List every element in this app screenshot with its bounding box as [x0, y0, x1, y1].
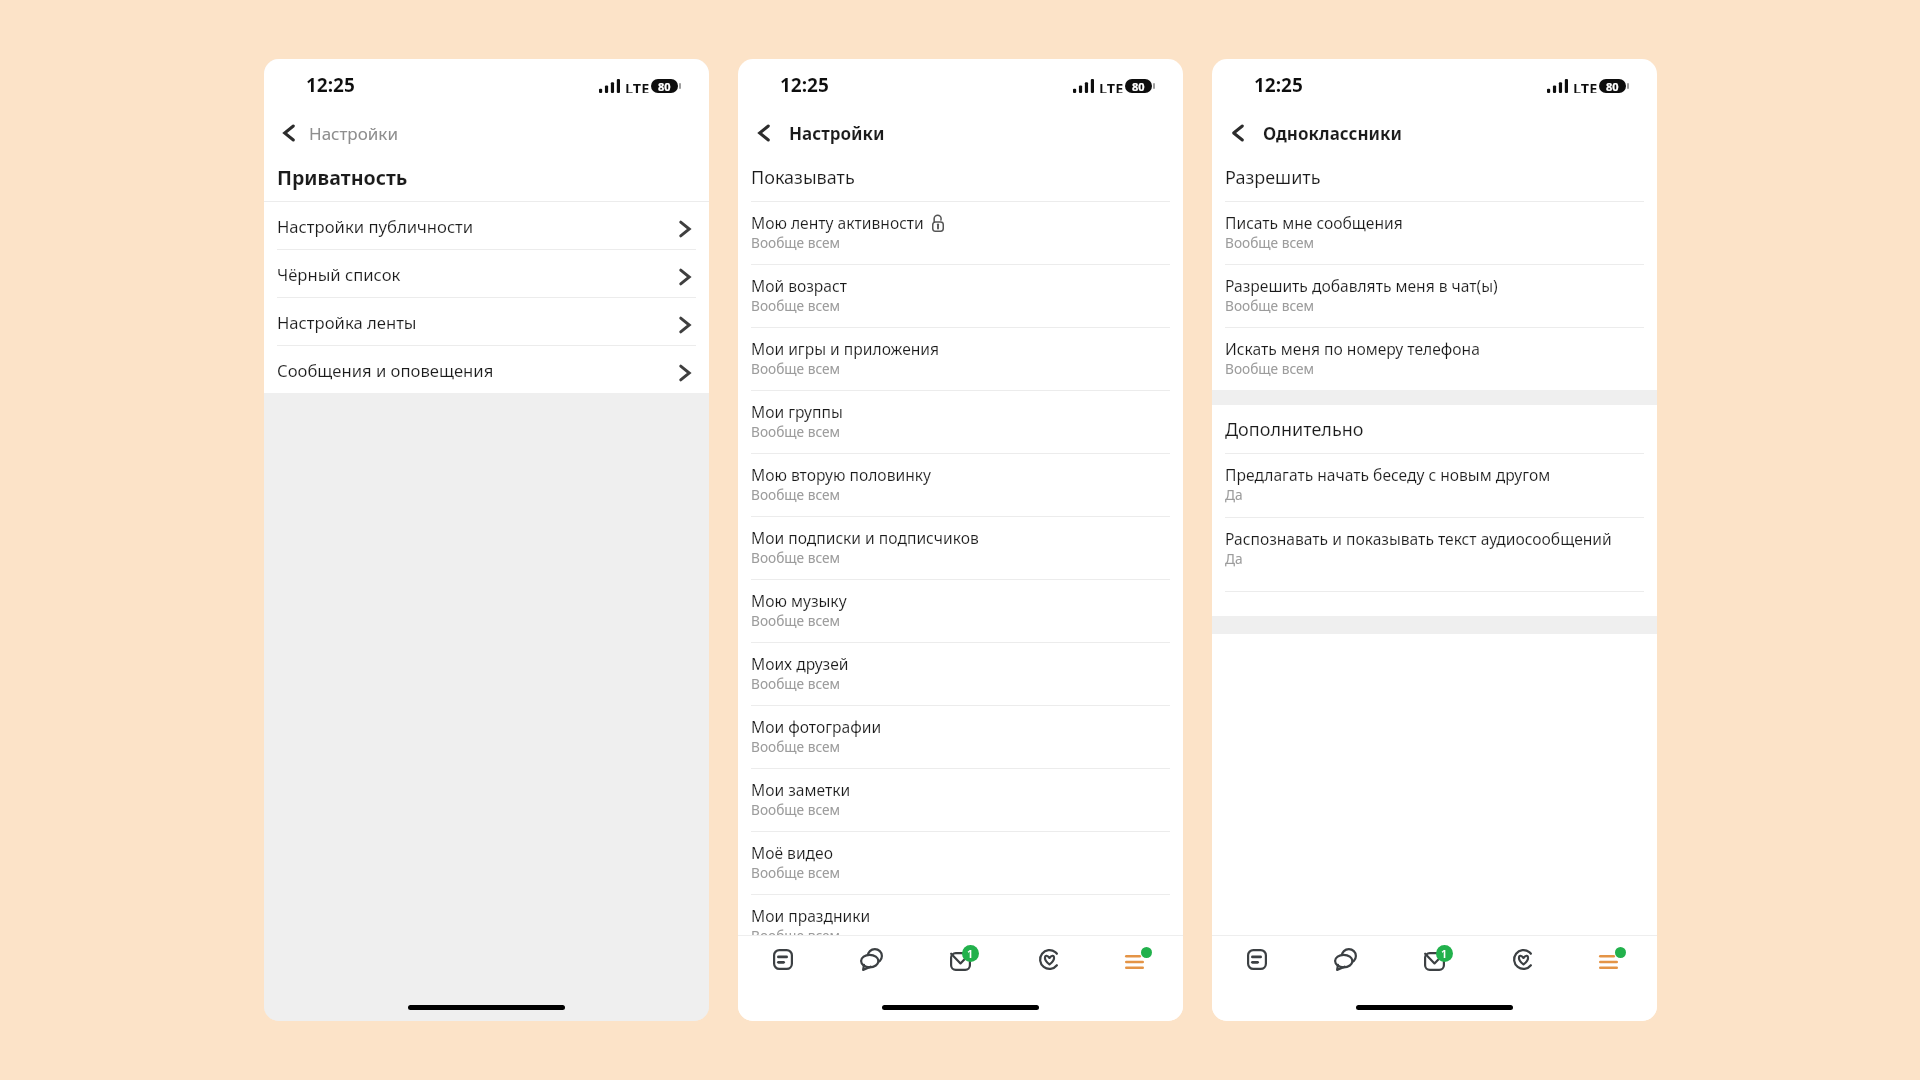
- staticText: LTE: [1099, 78, 1124, 93]
- button[interactable]: Мои группы: [738, 391, 1183, 453]
- button[interactable]: Искать меня по номеру телефона: [1212, 328, 1657, 390]
- staticText: Мои группы: [751, 401, 843, 422]
- staticText: Вообще всем: [751, 485, 841, 504]
- staticText: Дополнительно: [1225, 417, 1364, 442]
- button[interactable]: Discussions: [1301, 934, 1390, 985]
- staticText: Мою вторую половинку: [751, 464, 931, 485]
- staticText: Вообще всем: [751, 863, 841, 882]
- button[interactable]: Feed: [1212, 934, 1301, 985]
- staticText: Мою музыку: [751, 590, 847, 611]
- staticText: Вообще всем: [1225, 233, 1315, 252]
- button[interactable]: More: [1568, 934, 1657, 985]
- other: Back: [738, 113, 789, 153]
- staticText: Вообще всем: [1225, 296, 1315, 315]
- staticText: Вообще всем: [751, 296, 841, 315]
- staticText: Мои заметки: [751, 779, 851, 800]
- staticText: Одноклассники: [1263, 122, 1402, 145]
- staticText: Вообще всем: [751, 674, 841, 693]
- button[interactable]: Back: [738, 113, 1183, 153]
- button[interactable]: Notifications: [1479, 934, 1568, 985]
- button[interactable]: Писать мне сообщения: [1212, 202, 1657, 264]
- button[interactable]: Моих друзей: [738, 643, 1183, 705]
- button[interactable]: Back: [264, 113, 709, 153]
- staticText: 80: [658, 79, 671, 93]
- staticText: Распознавать и показывать текст аудиосоо…: [1225, 528, 1612, 549]
- button[interactable]: Messages: [1390, 934, 1479, 985]
- staticText: Вообще всем: [751, 233, 841, 252]
- staticText: Вообще всем: [751, 926, 841, 945]
- staticText: Настройки публичности: [277, 215, 474, 238]
- button[interactable]: Мои заметки: [738, 769, 1183, 831]
- staticText: Показывать: [751, 165, 855, 190]
- button[interactable]: Мои фотографии: [738, 706, 1183, 768]
- staticText: 1: [1441, 946, 1448, 961]
- button[interactable]: Feed: [738, 934, 827, 985]
- staticText: 12:25: [306, 72, 355, 98]
- button[interactable]: Мои игры и приложения: [738, 328, 1183, 390]
- staticText: Мою ленту активности: [751, 212, 924, 233]
- staticText: LTE: [1573, 78, 1598, 93]
- staticText: Разрешить добавлять меня в чат(ы): [1225, 275, 1498, 296]
- staticText: Писать мне сообщения: [1225, 212, 1403, 233]
- staticText: 1: [967, 946, 974, 961]
- button[interactable]: Настройки публичности: [264, 202, 709, 249]
- staticText: Моё видео: [751, 842, 833, 863]
- staticText: Вообще всем: [751, 359, 841, 378]
- button[interactable]: Сообщения и оповещения: [264, 346, 709, 393]
- button[interactable]: Мои подписки и подписчиков: [738, 517, 1183, 579]
- staticText: Моих друзей: [751, 653, 849, 674]
- staticText: Разрешить: [1225, 165, 1321, 190]
- staticText: Приватность: [277, 164, 408, 191]
- other: Back: [264, 113, 309, 153]
- button[interactable]: Настройка ленты: [264, 298, 709, 345]
- staticText: Настройки: [789, 122, 885, 145]
- staticText: Мой возраст: [751, 275, 847, 296]
- button[interactable]: Предлагать начать беседу с новым другом: [1212, 454, 1657, 517]
- button[interactable]: Мой возраст: [738, 265, 1183, 327]
- staticText: Вообще всем: [751, 737, 841, 756]
- staticText: Настройка ленты: [277, 311, 417, 334]
- button[interactable]: Notifications: [1005, 934, 1094, 985]
- button[interactable]: Мою ленту активности: [738, 202, 1183, 264]
- button[interactable]: Back: [1212, 113, 1657, 153]
- staticText: Мои фотографии: [751, 716, 882, 737]
- button[interactable]: More: [1094, 934, 1183, 985]
- staticText: Вообще всем: [751, 548, 841, 567]
- staticText: Вообще всем: [751, 422, 841, 441]
- other: Back: [1212, 113, 1263, 153]
- staticText: Вообще всем: [751, 800, 841, 819]
- staticText: Чёрный список: [277, 263, 401, 286]
- button[interactable]: Мою вторую половинку: [738, 454, 1183, 516]
- button[interactable]: Мою музыку: [738, 580, 1183, 642]
- staticText: 12:25: [780, 72, 829, 98]
- staticText: Предлагать начать беседу с новым другом: [1225, 464, 1551, 485]
- button[interactable]: Распознавать и показывать текст аудиосоо…: [1212, 518, 1657, 591]
- staticText: Настройки: [309, 122, 398, 145]
- button[interactable]: Разрешить добавлять меня в чат(ы): [1212, 265, 1657, 327]
- button[interactable]: Чёрный список: [264, 250, 709, 297]
- staticText: 80: [1606, 79, 1619, 93]
- staticText: LTE: [625, 78, 650, 93]
- button[interactable]: Messages: [916, 934, 1005, 985]
- staticText: Вообще всем: [1225, 359, 1315, 378]
- staticText: 80: [1132, 79, 1145, 93]
- button[interactable]: Мои праздники: [738, 895, 1183, 957]
- staticText: Да: [1225, 549, 1243, 568]
- staticText: Искать меня по номеру телефона: [1225, 338, 1480, 359]
- button[interactable]: Моё видео: [738, 832, 1183, 894]
- staticText: Да: [1225, 485, 1243, 504]
- staticText: 12:25: [1254, 72, 1303, 98]
- staticText: Мои игры и приложения: [751, 338, 940, 359]
- staticText: Мои праздники: [751, 905, 871, 926]
- staticText: Мои подписки и подписчиков: [751, 527, 979, 548]
- staticText: Вообще всем: [751, 611, 841, 630]
- button[interactable]: Discussions: [827, 934, 916, 985]
- staticText: Сообщения и оповещения: [277, 359, 494, 382]
